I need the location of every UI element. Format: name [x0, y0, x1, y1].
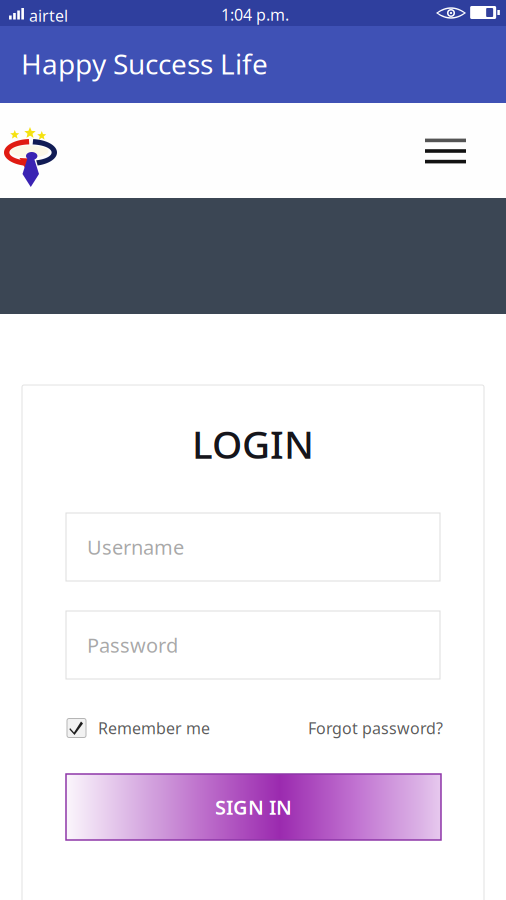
staticText: Forgot password? — [308, 717, 443, 739]
staticText: airtel — [29, 5, 68, 26]
staticText: SIGN IN — [215, 794, 292, 820]
staticText: Happy Success Life — [21, 45, 268, 82]
staticText: Password — [87, 632, 178, 658]
button[interactable]: Menu — [409, 123, 482, 179]
staticText: 1:04 p.m. — [221, 4, 289, 25]
button[interactable]: Remember me — [67, 715, 210, 741]
staticText: Username — [87, 534, 184, 560]
button[interactable]: Forgot password? — [308, 715, 443, 741]
button[interactable]: Password — [66, 611, 440, 679]
staticText: Remember me — [98, 717, 210, 739]
staticText: LOGIN — [192, 418, 314, 469]
button[interactable]: Username — [66, 513, 440, 581]
button[interactable]: SIGN IN — [66, 774, 441, 840]
